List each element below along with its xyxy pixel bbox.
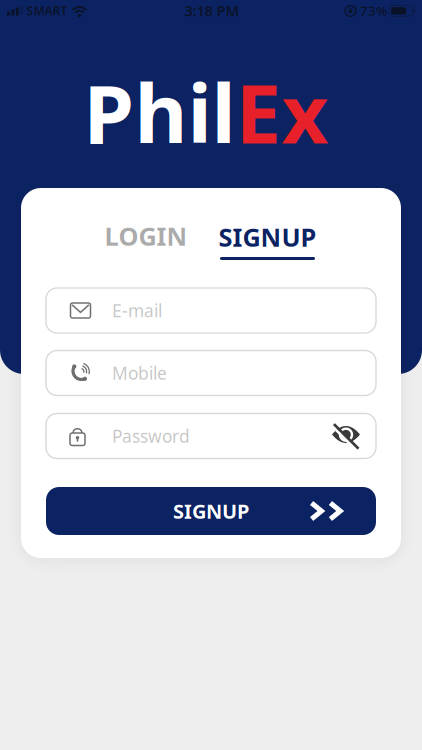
button[interactable]: E-mail [46,288,376,333]
button[interactable]: SIGNUP [46,487,376,535]
button[interactable]: Mobile [46,350,376,395]
staticText: Mobile [112,361,167,384]
staticText: SIGNUP [173,498,249,524]
staticText: 3:18 PM [184,1,239,20]
staticText: SIGNUP [218,220,316,254]
staticText: SMART [26,2,67,18]
staticText: 73% [360,2,387,19]
staticText: Ex [235,58,328,166]
staticText: Phil [83,58,235,166]
staticText: Password [112,424,190,447]
button[interactable]: Password [46,413,376,458]
button[interactable]: Show password [331,423,360,448]
button[interactable]: LOGIN [104,219,187,253]
button[interactable]: SIGNUP [217,228,317,262]
staticText: LOGIN [104,219,187,253]
staticText: E-mail [112,299,162,322]
